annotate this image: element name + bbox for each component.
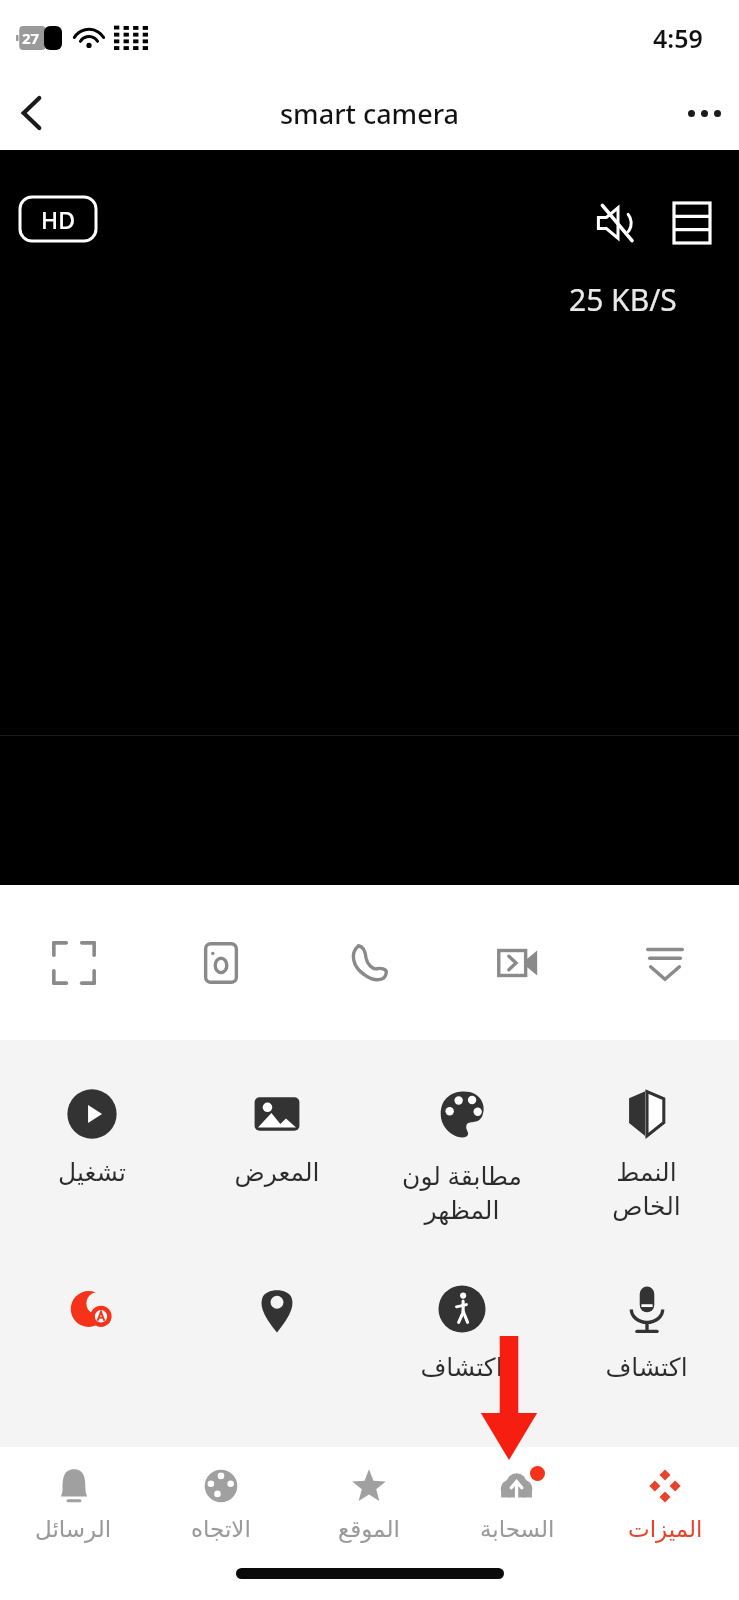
staticText: النمط الخاص bbox=[612, 1158, 681, 1221]
button[interactable]: النمط الخاص bbox=[554, 1086, 739, 1221]
button[interactable]: مطابقة لون المظهر bbox=[369, 1086, 554, 1225]
button[interactable]: Back bbox=[0, 81, 64, 145]
staticText: smart camera bbox=[280, 95, 460, 132]
button[interactable]: Quality HD bbox=[20, 197, 96, 241]
staticText: الميزات bbox=[628, 1516, 703, 1543]
staticText: السحابة bbox=[480, 1516, 555, 1543]
button[interactable]: Call bbox=[295, 885, 443, 1040]
button[interactable]: المعرض bbox=[184, 1086, 369, 1187]
button[interactable]: Feature bbox=[184, 1281, 369, 1353]
staticText: HD bbox=[41, 204, 76, 235]
staticText: الاتجاه bbox=[191, 1516, 251, 1543]
button[interactable]: الميزات bbox=[591, 1447, 739, 1559]
staticText: اكتشاف bbox=[605, 1353, 688, 1382]
button[interactable]: Collapse panel bbox=[591, 885, 739, 1040]
staticText: 27 bbox=[22, 28, 40, 48]
staticText: مطابقة لون المظهر bbox=[402, 1158, 522, 1225]
button[interactable]: اكتشاف bbox=[554, 1281, 739, 1382]
button[interactable]: Unmute bbox=[587, 194, 645, 252]
button[interactable]: Fullscreen bbox=[0, 885, 147, 1040]
staticText: 25 KB/S bbox=[569, 286, 677, 317]
button[interactable]: السحابة bbox=[443, 1447, 591, 1559]
button[interactable]: Feature bbox=[0, 1281, 184, 1353]
button[interactable]: More options bbox=[669, 78, 739, 148]
button[interactable]: اكتشاف bbox=[369, 1281, 554, 1382]
button[interactable]: Screenshot bbox=[147, 885, 295, 1040]
button[interactable]: Split view layout bbox=[663, 194, 721, 252]
staticText: الموقع bbox=[338, 1516, 400, 1543]
button[interactable]: تشغيل bbox=[0, 1086, 184, 1187]
staticText: تشغيل bbox=[58, 1158, 126, 1187]
button[interactable]: الاتجاه bbox=[147, 1447, 295, 1559]
staticText: 4:59 bbox=[653, 21, 703, 55]
button[interactable]: Record bbox=[443, 885, 591, 1040]
staticText: المعرض bbox=[234, 1158, 320, 1187]
staticText: اكتشاف bbox=[420, 1353, 503, 1382]
button[interactable]: الموقع bbox=[295, 1447, 443, 1559]
staticText: الرسائل bbox=[35, 1516, 112, 1543]
button[interactable]: الرسائل bbox=[0, 1447, 147, 1559]
